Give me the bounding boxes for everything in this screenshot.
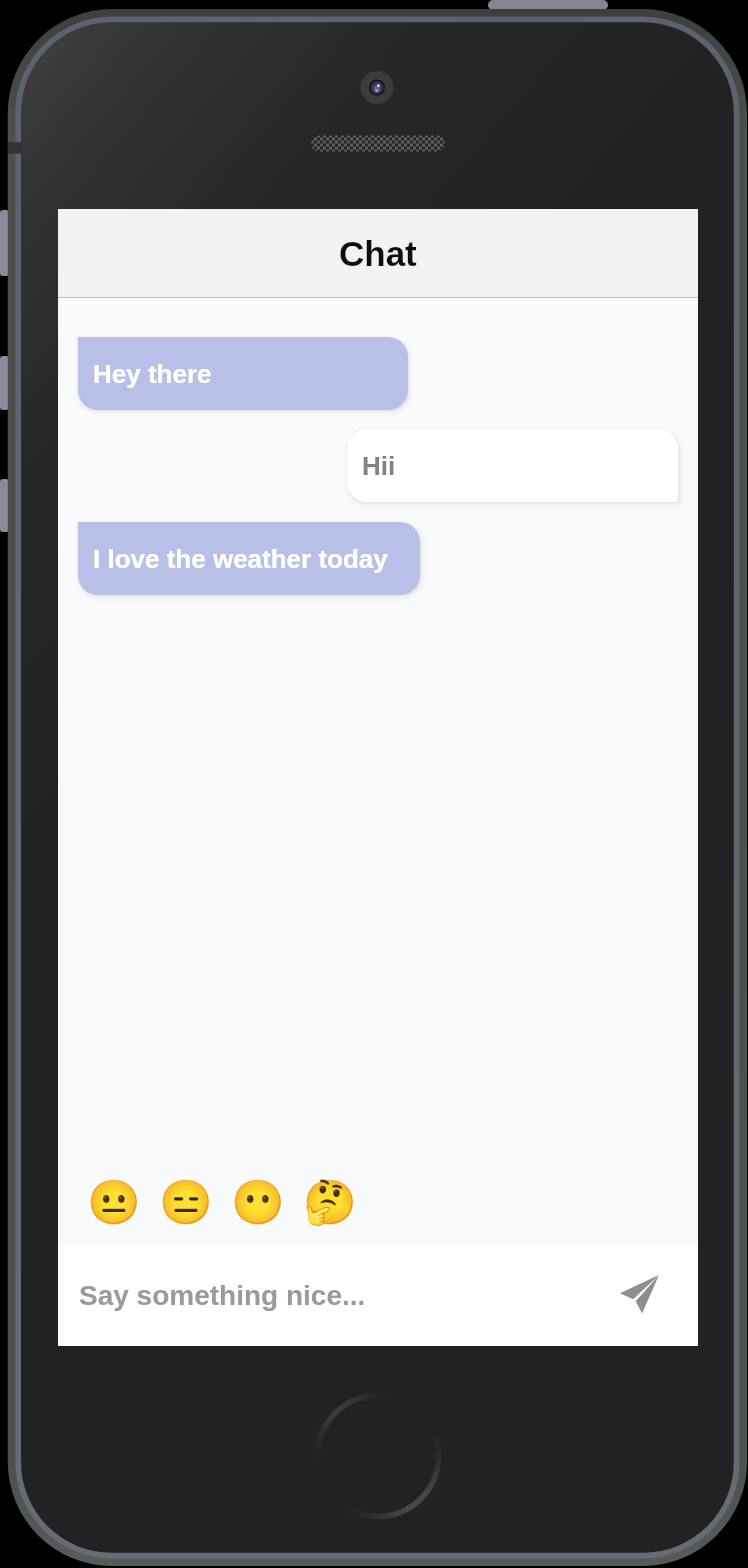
button[interactable]: Hii: [347, 429, 678, 502]
button[interactable]: I love the weather today: [78, 522, 420, 595]
staticText: I love the weather today: [93, 544, 388, 573]
button[interactable]: Neutral face: [78, 1165, 150, 1227]
staticText: Chat: [339, 234, 417, 273]
button[interactable]: Thinking face: [294, 1165, 366, 1227]
staticText: Hii: [362, 451, 396, 480]
button[interactable]: Expressionless face: [150, 1165, 222, 1227]
staticText: 🤔: [303, 1177, 357, 1227]
button[interactable]: Hey there: [78, 337, 408, 410]
button[interactable]: Face without mouth: [222, 1165, 294, 1227]
staticText: 😐: [87, 1177, 141, 1227]
staticText: 😑: [159, 1177, 213, 1227]
staticText: Hey there: [93, 359, 212, 388]
button[interactable]: Say something nice...: [58, 1280, 603, 1311]
staticText: 😶: [231, 1177, 285, 1227]
staticText: Say something nice...: [79, 1280, 366, 1311]
button[interactable]: Send: [603, 1258, 677, 1332]
